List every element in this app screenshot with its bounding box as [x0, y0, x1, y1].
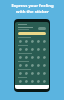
button[interactable] — [42, 63, 46, 67]
button[interactable] — [30, 79, 34, 83]
staticText: Express your feeling — [11, 3, 54, 9]
button[interactable] — [36, 55, 40, 59]
button[interactable] — [30, 55, 34, 59]
button[interactable] — [30, 63, 34, 67]
button[interactable] — [36, 79, 40, 83]
button[interactable] — [36, 47, 40, 51]
button[interactable] — [24, 63, 28, 67]
button[interactable] — [36, 71, 40, 75]
button[interactable] — [18, 55, 22, 59]
button[interactable] — [24, 47, 28, 51]
button[interactable] — [24, 71, 28, 75]
button[interactable] — [42, 71, 46, 75]
button[interactable] — [24, 39, 28, 43]
button[interactable] — [42, 55, 46, 59]
button[interactable] — [24, 55, 28, 59]
button[interactable] — [42, 79, 46, 83]
button[interactable] — [38, 27, 46, 30]
button[interactable] — [18, 32, 46, 35]
button[interactable] — [36, 63, 40, 67]
button[interactable] — [42, 47, 46, 51]
staticText: with the sticker — [16, 9, 49, 15]
button[interactable] — [18, 63, 22, 67]
button[interactable] — [30, 47, 34, 51]
button[interactable] — [18, 79, 22, 83]
button[interactable] — [18, 39, 22, 43]
button[interactable] — [30, 71, 34, 75]
button[interactable] — [42, 39, 46, 43]
button[interactable] — [18, 71, 22, 75]
button[interactable] — [24, 79, 28, 83]
button[interactable] — [30, 39, 34, 43]
button[interactable] — [36, 39, 40, 43]
button[interactable] — [18, 47, 22, 51]
